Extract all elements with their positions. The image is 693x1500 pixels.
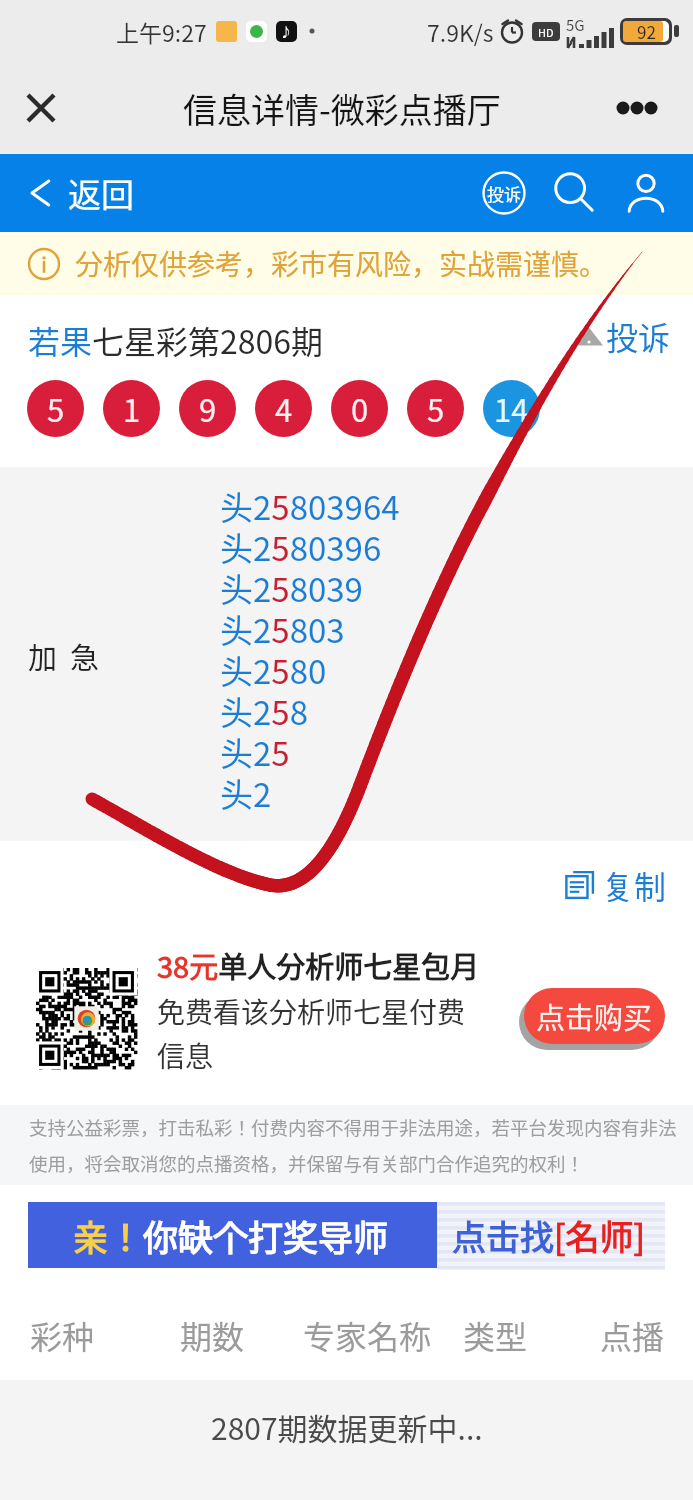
button[interactable]: 点播 — [599, 1290, 665, 1380]
button[interactable]: 专家名称 — [301, 1290, 433, 1380]
button[interactable]: 返回 — [26, 169, 134, 217]
staticText: 38元单人分析师七星包月 — [157, 944, 480, 986]
staticText: 期数 — [180, 1312, 245, 1358]
staticText: 投诉 — [487, 181, 521, 206]
button[interactable]: 点击购买 — [524, 988, 665, 1044]
staticText: 头258039 — [220, 564, 363, 605]
button[interactable]: 类型 — [462, 1290, 528, 1380]
staticText: 头2580 — [220, 646, 327, 687]
staticText: 头25803964 — [220, 482, 400, 523]
button[interactable]: 期数 — [179, 1290, 245, 1380]
staticText: 头258 — [220, 687, 308, 728]
staticText: HD — [538, 24, 554, 40]
button[interactable]: 投诉 — [574, 313, 671, 359]
staticText: 若果七星彩第2806期 — [28, 317, 324, 363]
staticText: 投诉 — [606, 313, 671, 359]
staticText: 加 急 — [28, 635, 99, 677]
button[interactable]: 亲！你缺个打奖导师 — [28, 1202, 665, 1268]
staticText: 返回 — [68, 169, 134, 217]
staticText: 上午9:27 — [116, 15, 207, 48]
button[interactable]: Profile — [622, 169, 670, 217]
staticText: 头25803 — [220, 605, 345, 646]
staticText: 类型 — [463, 1312, 528, 1358]
staticText: 使用，将会取消您的点播资格，并保留与有关部门合作追究的权利！ — [29, 1150, 585, 1177]
staticText: 支持公益彩票，打击私彩！付费内容不得用于非法用途，若平台发现内容有非法 — [29, 1114, 677, 1141]
staticText: 1 — [123, 386, 141, 431]
staticText: ♪ — [280, 23, 293, 40]
staticText: 分析仅供参考，彩市有风险，实战需谨慎。 — [75, 243, 608, 284]
staticText: 5 — [47, 386, 65, 431]
staticText: 复制 — [602, 862, 667, 908]
staticText: 头25 — [220, 728, 290, 769]
staticText: 头2580396 — [220, 523, 382, 564]
staticText: 0 — [351, 386, 369, 431]
staticText: 点击找[名师] — [452, 1211, 645, 1260]
button[interactable]: Close — [13, 80, 69, 136]
button[interactable]: 复制 — [563, 862, 667, 908]
staticText: 92 — [637, 19, 656, 44]
button[interactable]: 投诉 — [480, 169, 528, 217]
staticText: 亲！你缺个打奖导师 — [73, 1210, 389, 1261]
staticText: 14 — [494, 386, 529, 431]
staticText: 头2 — [220, 769, 272, 810]
staticText: 7.9K/s — [427, 15, 494, 48]
staticText: 免费看该分析师七星付费信息 — [157, 991, 492, 1075]
staticText: 彩种 — [30, 1312, 95, 1358]
staticText: 5 — [427, 386, 445, 431]
staticText: 4 — [275, 386, 293, 431]
staticText: 信息详情-微彩点播厅 — [183, 84, 501, 133]
button[interactable]: More options — [609, 80, 665, 136]
staticText: 点播 — [600, 1312, 665, 1358]
staticText: 专家名称 — [303, 1312, 432, 1358]
button[interactable]: 彩种 — [29, 1290, 95, 1380]
button[interactable]: Search — [550, 169, 598, 217]
staticText: 5G — [566, 14, 585, 36]
staticText: 9 — [199, 386, 217, 431]
staticText: 2807期数据更新中... — [211, 1405, 483, 1448]
staticText: 点击购买 — [536, 995, 653, 1037]
